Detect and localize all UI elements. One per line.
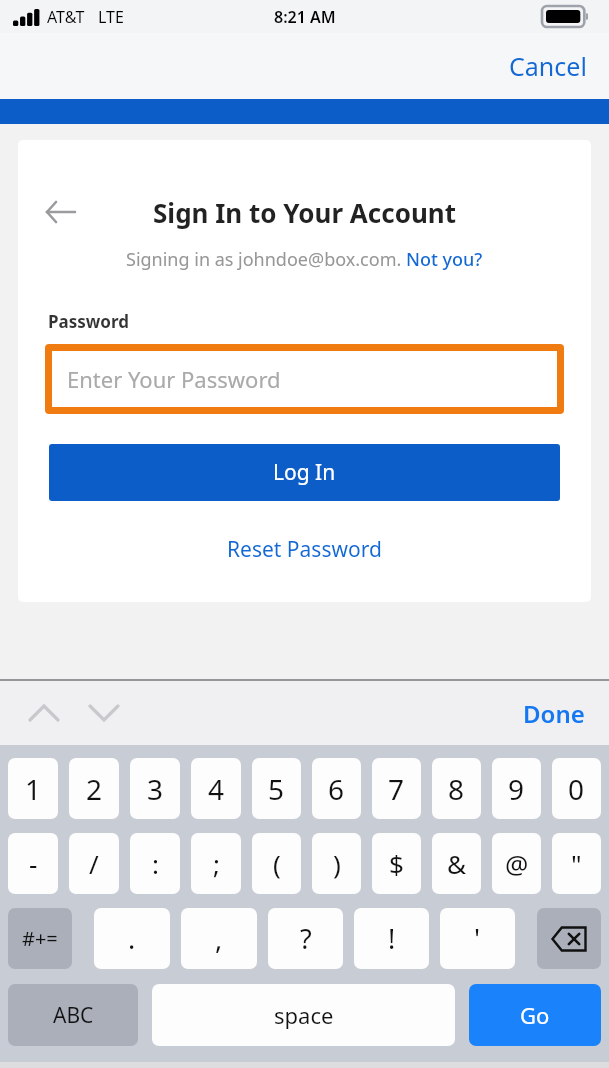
button[interactable]: 6 — [312, 758, 361, 819]
staticText: / — [89, 846, 99, 881]
staticText: LTE — [98, 6, 124, 28]
staticText: $ — [389, 846, 404, 881]
staticText: Not you? — [406, 247, 483, 272]
button[interactable]: ' — [440, 908, 515, 969]
button[interactable]: 1 — [8, 758, 58, 819]
button[interactable]: ABC — [8, 984, 138, 1046]
staticText: Reset Password — [227, 535, 382, 564]
staticText: . — [128, 920, 136, 957]
button[interactable]: Cancel — [487, 41, 609, 91]
button[interactable]: Next field — [80, 689, 128, 737]
staticText: Done — [523, 697, 585, 730]
button[interactable]: Previous field — [20, 689, 68, 737]
button[interactable]: @ — [492, 833, 541, 894]
button[interactable]: 3 — [130, 758, 180, 819]
staticText: ABC — [53, 1001, 94, 1030]
button[interactable]: Enter Your Password — [52, 351, 557, 407]
button[interactable]: Done — [499, 689, 609, 738]
button[interactable]: 9 — [492, 758, 541, 819]
button[interactable]: - — [8, 833, 58, 894]
button[interactable]: / — [69, 833, 119, 894]
button[interactable]: & — [432, 833, 481, 894]
staticText: - — [29, 846, 38, 881]
staticText: Go — [520, 1000, 550, 1030]
staticText: 1 — [25, 770, 42, 808]
button[interactable]: : — [130, 833, 180, 894]
button[interactable]: . — [94, 908, 170, 969]
staticText: & — [447, 846, 467, 881]
staticText: ' — [474, 920, 481, 957]
button[interactable]: Backspace — [537, 908, 601, 969]
staticText: : — [152, 846, 159, 881]
button[interactable]: Reset Password — [219, 527, 390, 572]
staticText: Password — [48, 310, 129, 333]
button[interactable]: , — [181, 908, 257, 969]
staticText: 4 — [208, 770, 225, 808]
button[interactable]: 4 — [191, 758, 241, 819]
staticText: ) — [333, 846, 341, 881]
staticText: 8:21 AM — [274, 6, 336, 28]
button[interactable]: 5 — [252, 758, 301, 819]
staticText: ? — [300, 920, 312, 957]
button[interactable]: Log In — [49, 444, 560, 501]
button[interactable]: Back — [36, 188, 84, 236]
staticText: 6 — [328, 770, 345, 808]
button[interactable]: Go — [469, 984, 601, 1046]
staticText: Signing in as johndoe@box.com. — [126, 247, 406, 272]
staticText: , — [215, 920, 223, 957]
staticText: " — [571, 846, 582, 881]
staticText: Cancel — [509, 49, 587, 83]
staticText: ! — [388, 920, 396, 957]
staticText: 7 — [388, 770, 405, 808]
button[interactable]: ) — [312, 833, 361, 894]
staticText: @ — [505, 846, 529, 881]
button[interactable]: Not you? — [406, 247, 483, 272]
staticText: 0 — [568, 770, 585, 808]
button[interactable]: " — [552, 833, 601, 894]
staticText: Enter Your Password — [67, 364, 281, 394]
button[interactable]: #+= — [8, 908, 72, 969]
staticText: Sign In to Your Account — [153, 195, 456, 230]
button[interactable]: space — [152, 984, 455, 1046]
staticText: ; — [213, 846, 220, 881]
button[interactable]: ! — [354, 908, 429, 969]
staticText: ( — [273, 846, 281, 881]
button[interactable]: 2 — [69, 758, 119, 819]
staticText: Log In — [273, 458, 336, 487]
staticText: #+= — [22, 925, 58, 952]
button[interactable]: 7 — [372, 758, 421, 819]
button[interactable]: 0 — [552, 758, 601, 819]
button[interactable]: ? — [268, 908, 343, 969]
button[interactable]: $ — [372, 833, 421, 894]
staticText: 9 — [508, 770, 525, 808]
staticText: 5 — [268, 770, 285, 808]
staticText: 3 — [147, 770, 164, 808]
staticText: 2 — [86, 770, 103, 808]
staticText: AT&T — [47, 6, 85, 28]
staticText: space — [274, 1000, 334, 1030]
button[interactable]: 8 — [432, 758, 481, 819]
button[interactable]: ( — [252, 833, 301, 894]
button[interactable]: ; — [191, 833, 241, 894]
staticText: 8 — [448, 770, 465, 808]
